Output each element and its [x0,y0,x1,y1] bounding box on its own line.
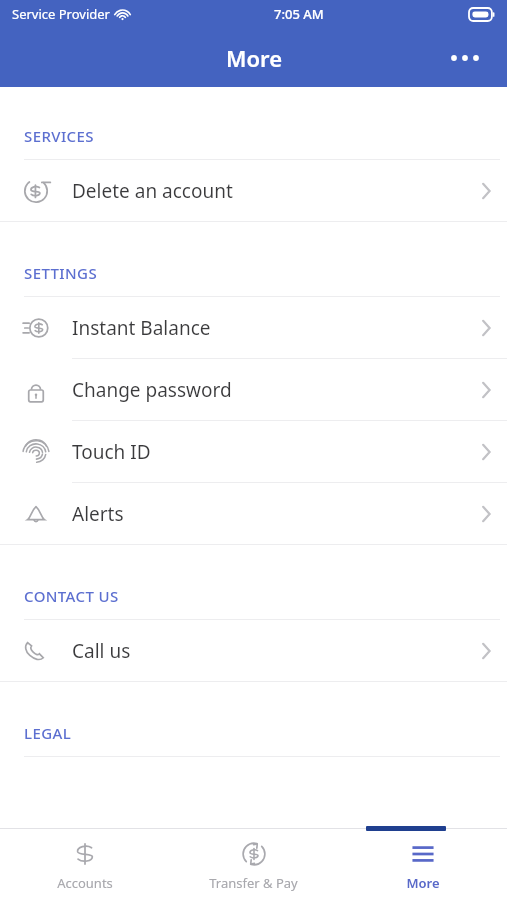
staticText: Delete an account [72,178,233,204]
staticText: Call us [72,638,131,664]
staticText: Accounts [57,874,113,892]
button[interactable]: Instant Balance [0,297,507,358]
staticText: Transfer & Pay [209,874,298,892]
staticText: Change password [72,377,232,403]
button[interactable]: Change password [0,359,507,420]
staticText: Instant Balance [72,315,211,341]
staticText: Touch ID [72,439,151,465]
staticText: SERVICES [24,126,94,146]
staticText: SETTINGS [24,263,98,283]
staticText: More [226,43,282,73]
button[interactable]: Touch ID [0,421,507,482]
button[interactable]: More [338,829,507,900]
button[interactable]: Transfer & Pay [169,829,338,900]
button[interactable]: Delete an account [0,160,507,221]
staticText: CONTACT US [24,586,119,606]
button[interactable]: Call us [0,620,507,681]
button[interactable]: Alerts [0,483,507,544]
staticText: Service Provider [12,5,110,23]
staticText: LEGAL [24,723,72,743]
button[interactable]: More options [445,38,485,78]
staticText: More [406,874,440,892]
staticText: 7:05 AM [274,5,324,23]
button[interactable]: Accounts [0,829,169,900]
staticText: Alerts [72,501,124,527]
